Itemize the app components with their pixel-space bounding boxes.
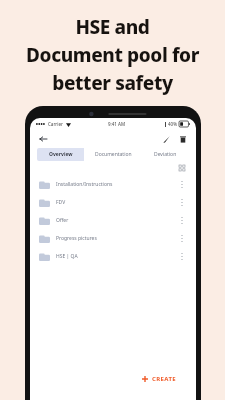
staticText: Carrier	[48, 121, 63, 127]
button[interactable]: More options for Offer	[177, 215, 187, 225]
button[interactable]: Deviation	[142, 148, 189, 161]
button[interactable]: Offer	[30, 211, 196, 229]
staticText: HSE and	[75, 14, 150, 40]
button[interactable]: HSE | QA	[30, 247, 196, 265]
staticText: Installation/Instructions	[56, 181, 113, 188]
button[interactable]: More options for FDV	[177, 197, 187, 207]
staticText: HSE | QA	[56, 253, 78, 260]
button[interactable]: Progress pictures	[30, 229, 196, 247]
button[interactable]: Documentation	[84, 148, 142, 161]
staticText: 9:41 AM	[108, 121, 126, 127]
button[interactable]: Delete	[177, 133, 189, 145]
staticText: Documentation	[95, 151, 132, 158]
staticText: Overview	[49, 151, 73, 158]
button[interactable]: More options for Progress pictures	[177, 233, 187, 243]
button[interactable]: Toggle grid view	[177, 163, 187, 173]
button[interactable]: CREATE	[131, 368, 188, 390]
button[interactable]: Edit	[160, 133, 172, 145]
staticText: better safety	[52, 70, 173, 96]
button[interactable]: More options for HSE | QA	[177, 251, 187, 261]
button[interactable]: Back	[37, 133, 49, 145]
staticText: Progress pictures	[56, 235, 97, 242]
staticText: FDV	[56, 199, 66, 206]
button[interactable]: FDV	[30, 193, 196, 211]
button[interactable]: More options for Installation/Instructio…	[177, 179, 187, 189]
button[interactable]: Installation/Instructions	[30, 175, 196, 193]
button[interactable]: Overview	[37, 148, 84, 161]
staticText: 40%	[168, 121, 177, 127]
staticText: Document pool for	[26, 42, 199, 68]
staticText: CREATE	[152, 375, 177, 383]
staticText: Offer	[56, 217, 69, 224]
staticText: Deviation	[154, 151, 177, 158]
